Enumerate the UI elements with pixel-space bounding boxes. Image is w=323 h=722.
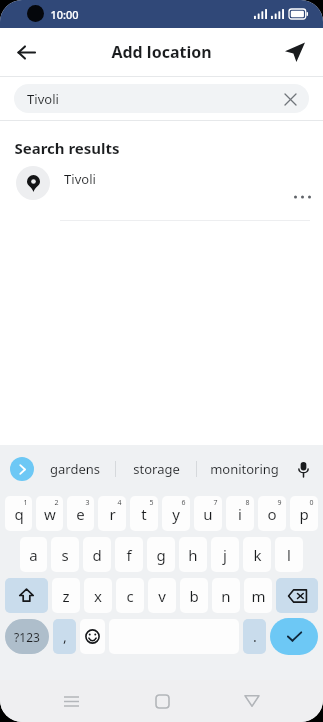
staticText: v: [158, 586, 166, 606]
button[interactable]: Clear search: [279, 88, 301, 110]
staticText: k: [253, 545, 262, 565]
staticText: 9: [277, 498, 282, 508]
button[interactable]: Enter: [270, 618, 318, 655]
button[interactable]: g: [147, 537, 175, 572]
button[interactable]: Backspace: [276, 578, 318, 613]
staticText: 2: [54, 498, 59, 508]
staticText: ,: [63, 627, 67, 646]
staticText: .: [253, 627, 257, 646]
staticText: 10:00: [50, 7, 79, 22]
staticText: c: [126, 586, 134, 606]
button[interactable]: d: [83, 537, 111, 572]
button[interactable]: u: [194, 496, 222, 531]
staticText: 7: [213, 498, 218, 508]
staticText: g: [156, 545, 166, 565]
button[interactable]: h: [179, 537, 207, 572]
button[interactable]: ?123: [5, 619, 49, 654]
button[interactable]: i: [226, 496, 254, 531]
staticText: r: [109, 504, 116, 524]
staticText: d: [92, 545, 102, 565]
button[interactable]: r: [98, 496, 126, 531]
staticText: y: [172, 504, 180, 524]
staticText: Search results: [14, 138, 120, 158]
button[interactable]: .: [243, 619, 266, 654]
button[interactable]: o: [258, 496, 286, 531]
button[interactable]: w: [36, 496, 63, 531]
button[interactable]: Voice input: [291, 457, 315, 481]
staticText: 5: [149, 498, 154, 508]
staticText: l: [287, 545, 291, 565]
staticText: b: [189, 586, 199, 606]
staticText: monitoring: [210, 460, 279, 478]
button[interactable]: l: [275, 537, 303, 572]
staticText: i: [238, 504, 242, 524]
button[interactable]: More suggestions: [10, 457, 34, 481]
button[interactable]: j: [211, 537, 239, 572]
staticText: Tivoli: [27, 90, 59, 108]
button[interactable]: Tivoli: [14, 84, 309, 113]
button[interactable]: Back: [8, 34, 44, 70]
staticText: a: [29, 545, 38, 565]
button[interactable]: monitoring: [197, 445, 291, 493]
staticText: storage: [133, 460, 180, 478]
staticText: f: [126, 545, 132, 565]
staticText: w: [44, 504, 56, 524]
staticText: h: [188, 545, 198, 565]
staticText: 0: [309, 498, 314, 508]
button[interactable]: More options: [289, 184, 315, 210]
button[interactable]: p: [290, 496, 318, 531]
button[interactable]: gardens: [34, 445, 115, 493]
staticText: 6: [181, 498, 186, 508]
staticText: 4: [117, 498, 122, 508]
button[interactable]: Shift: [5, 578, 48, 613]
button[interactable]: Recent apps: [51, 681, 91, 721]
button[interactable]: b: [180, 578, 208, 613]
staticText: p: [299, 504, 309, 524]
staticText: o: [267, 504, 277, 524]
button[interactable]: k: [243, 537, 271, 572]
button[interactable]: Home: [142, 681, 182, 721]
button[interactable]: n: [212, 578, 240, 613]
staticText: Add location: [111, 41, 212, 63]
staticText: u: [203, 504, 213, 524]
staticText: 8: [245, 498, 250, 508]
staticText: 3: [85, 498, 90, 508]
staticText: s: [61, 545, 69, 565]
staticText: q: [14, 504, 24, 524]
button[interactable]: ,: [53, 619, 76, 654]
staticText: z: [62, 586, 70, 606]
button[interactable]: Emoji: [80, 619, 105, 654]
staticText: e: [76, 504, 85, 524]
button[interactable]: z: [52, 578, 80, 613]
button[interactable]: e: [67, 496, 94, 531]
staticText: j: [223, 545, 227, 565]
button[interactable]: storage: [116, 445, 196, 493]
button[interactable]: m: [244, 578, 272, 613]
staticText: gardens: [50, 460, 100, 478]
staticText: ?123: [14, 629, 40, 645]
button[interactable]: f: [115, 537, 143, 572]
staticText: x: [94, 586, 102, 606]
button[interactable]: Back: [232, 681, 272, 721]
button[interactable]: s: [51, 537, 79, 572]
button[interactable]: c: [116, 578, 144, 613]
staticText: t: [141, 504, 147, 524]
staticText: 1: [23, 498, 28, 508]
button[interactable]: q: [5, 496, 32, 531]
button[interactable]: a: [20, 537, 47, 572]
button[interactable]: y: [162, 496, 190, 531]
button[interactable]: t: [130, 496, 158, 531]
button[interactable]: Tivoli: [0, 158, 323, 220]
button[interactable]: x: [84, 578, 112, 613]
staticText: n: [221, 586, 231, 606]
staticText: m: [251, 586, 266, 606]
button[interactable]: v: [148, 578, 176, 613]
button[interactable]: Use my location: [277, 34, 313, 70]
staticText: Tivoli: [64, 170, 96, 188]
